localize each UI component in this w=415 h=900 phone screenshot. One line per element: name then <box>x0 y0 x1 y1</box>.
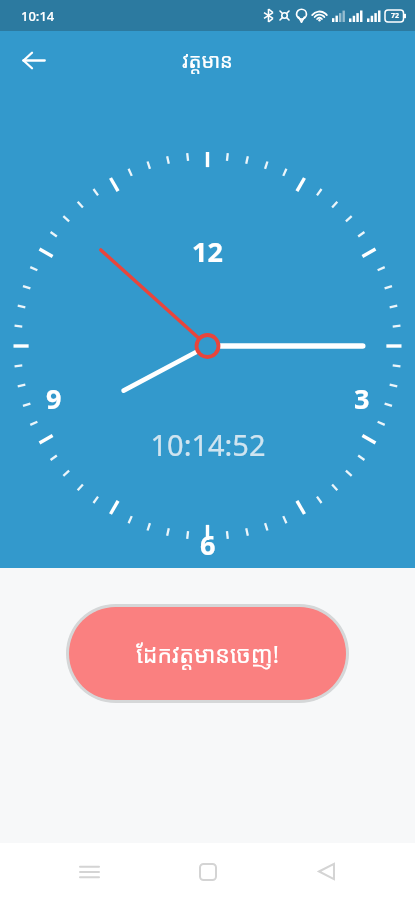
button[interactable]: Home <box>178 843 238 900</box>
button[interactable]: Recents <box>59 843 119 900</box>
button[interactable]: Back <box>9 36 57 84</box>
staticText: 6 <box>200 526 216 563</box>
button[interactable]: ដែកវត្តមានចេញ! <box>69 607 346 700</box>
staticText: 3 <box>354 380 370 417</box>
staticText: 10:14 <box>21 7 55 25</box>
staticText: 10:14:52 <box>150 425 266 464</box>
staticText: 72 <box>391 11 400 21</box>
staticText: 9 <box>46 380 62 417</box>
staticText: ដែកវត្តមានចេញ! <box>136 638 279 669</box>
staticText: វត្តមាន <box>182 47 233 74</box>
staticText: 12 <box>192 233 223 270</box>
button[interactable]: Back <box>296 843 356 900</box>
